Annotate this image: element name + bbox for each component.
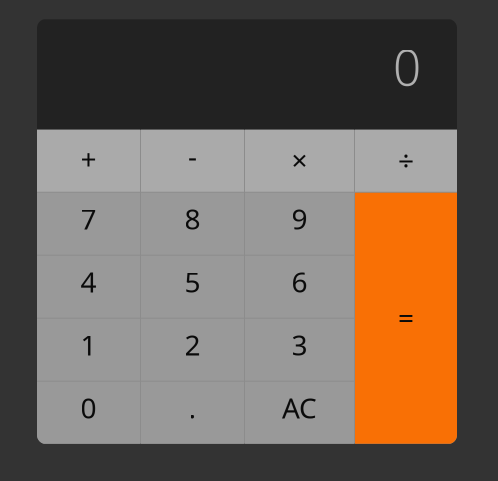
button[interactable]: 0: [37, 382, 140, 444]
staticText: 0: [393, 34, 421, 99]
button[interactable]: 1: [37, 319, 140, 381]
staticText: 3: [291, 326, 307, 363]
button[interactable]: Decimal point: [141, 382, 244, 444]
button[interactable]: 2: [141, 319, 244, 381]
button[interactable]: Equals: [355, 193, 457, 444]
button[interactable]: 3: [245, 319, 354, 381]
button[interactable]: Plus: [37, 130, 140, 192]
staticText: 7: [80, 200, 96, 237]
staticText: 8: [184, 200, 200, 237]
staticText: .: [188, 389, 196, 426]
staticText: 5: [184, 263, 200, 300]
button[interactable]: All clear: [245, 382, 354, 444]
staticText: 1: [80, 326, 96, 363]
staticText: 2: [184, 326, 200, 363]
staticText: 9: [291, 200, 307, 237]
staticText: AC: [282, 389, 317, 426]
button[interactable]: 7: [37, 193, 140, 255]
button[interactable]: Minus: [141, 130, 244, 192]
staticText: 4: [80, 263, 96, 300]
staticText: 0: [80, 389, 96, 426]
button[interactable]: Multiply: [245, 130, 354, 192]
staticText: +: [80, 140, 96, 177]
staticText: ×: [291, 141, 307, 178]
staticText: ÷: [398, 141, 414, 178]
button[interactable]: 9: [245, 193, 354, 255]
button[interactable]: 5: [141, 256, 244, 318]
button[interactable]: 8: [141, 193, 244, 255]
button[interactable]: 6: [245, 256, 354, 318]
button[interactable]: Divide: [355, 130, 457, 192]
staticText: =: [398, 299, 414, 336]
staticText: -: [188, 137, 197, 174]
button[interactable]: 4: [37, 256, 140, 318]
staticText: 6: [291, 263, 307, 300]
